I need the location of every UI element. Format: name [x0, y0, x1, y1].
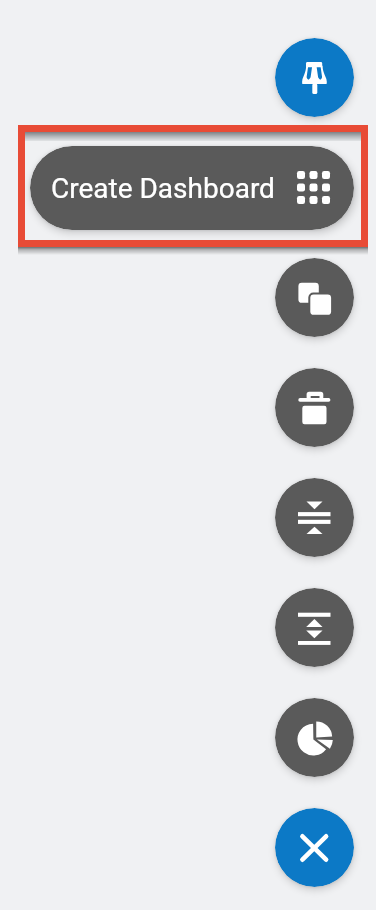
button[interactable]: Chart — [275, 698, 354, 777]
button[interactable]: Distribute vertically — [275, 588, 354, 667]
staticText: Create Dashboard — [51, 172, 275, 205]
button[interactable]: Pin — [275, 38, 354, 117]
button[interactable]: Delete — [275, 368, 354, 447]
button[interactable]: Close — [275, 808, 354, 887]
button[interactable]: Create Dashboard — [30, 146, 354, 230]
button[interactable]: Duplicate — [275, 258, 354, 337]
button[interactable]: Align vertical center — [275, 478, 354, 557]
